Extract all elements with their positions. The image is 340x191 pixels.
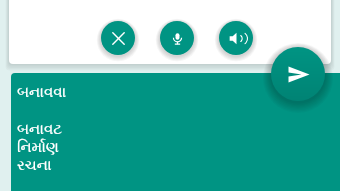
staticText: રચના — [17, 158, 52, 173]
button[interactable]: Send — [271, 47, 325, 101]
button[interactable]: Clear text — [101, 21, 135, 55]
staticText: બનાવટ — [17, 122, 62, 137]
button[interactable]: બનાવવા — [11, 73, 340, 191]
button[interactable]: Listen — [219, 21, 253, 55]
staticText: નિર્માણ — [17, 140, 59, 155]
button[interactable]: Voice input — [160, 21, 194, 55]
staticText: બનાવવા — [17, 85, 67, 100]
